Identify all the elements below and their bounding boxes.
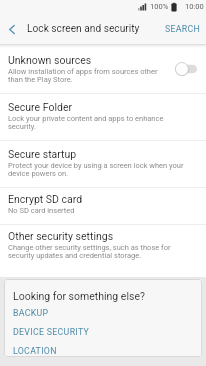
staticText: Encrypt SD card — [8, 193, 83, 205]
button[interactable]: Encrypt SD card — [0, 193, 206, 215]
button[interactable] — [0, 17, 24, 41]
button[interactable]: BACKUP — [13, 308, 49, 318]
button[interactable]: LOCATION — [13, 346, 57, 356]
button[interactable]: SEARCH — [165, 24, 206, 34]
button[interactable]: Other security settings — [0, 230, 206, 260]
button[interactable]: DEVICE SECURITY — [13, 327, 90, 337]
button[interactable]: Secure Folder — [0, 101, 206, 131]
staticText: Other security settings — [8, 230, 114, 242]
staticText: Allow installation of apps from sources … — [8, 67, 158, 84]
staticText: No SD card inserted — [8, 206, 75, 215]
button[interactable]: Secure startup — [0, 148, 206, 178]
staticText: Looking for something else? — [13, 290, 145, 302]
staticText: LOCATION — [13, 346, 57, 356]
staticText: Secure Folder — [8, 101, 73, 113]
staticText: 10:00 — [185, 2, 204, 11]
staticText: Change other security settings, such as … — [8, 243, 171, 260]
staticText: SEARCH — [165, 24, 201, 34]
staticText: BACKUP — [13, 308, 49, 318]
staticText: Lock screen and security — [27, 23, 140, 35]
staticText: Secure startup — [8, 148, 77, 160]
staticText: 100% — [150, 2, 169, 11]
staticText: DEVICE SECURITY — [13, 327, 90, 337]
button[interactable]: Unknown sources — [0, 54, 206, 84]
staticText: Protect your device by using a screen lo… — [8, 161, 184, 178]
staticText: Unknown sources — [8, 54, 92, 66]
staticText: Lock your private content and apps to en… — [8, 114, 164, 131]
